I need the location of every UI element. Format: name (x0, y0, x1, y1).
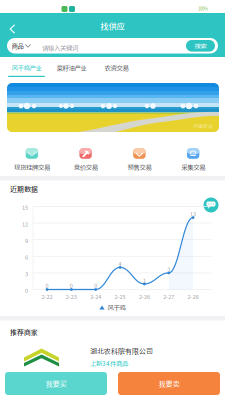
button[interactable]: 搜索 (186, 40, 215, 52)
staticText: 2-23 (66, 292, 77, 301)
staticText: 0 (45, 281, 48, 289)
staticText: 0 (94, 281, 97, 289)
button[interactable]: 我要买 (5, 372, 107, 395)
staticText: 0 (25, 286, 28, 294)
button[interactable]: 现货挂牌交易 (5, 149, 59, 171)
button[interactable]: 商品 (7, 38, 34, 53)
staticText: 我要买 (45, 378, 66, 389)
button[interactable]: 竞价交易 (59, 149, 113, 171)
button[interactable]: 湖北农科院有限公司 (0, 344, 225, 370)
button[interactable]: 我要卖 (118, 372, 220, 395)
staticText: 风干鸡 (108, 303, 126, 312)
staticText: 湖北农科院有限公司 (90, 346, 153, 356)
button[interactable]: Back (3, 18, 22, 40)
button[interactable]: Refresh (203, 197, 218, 212)
staticText: 100% (198, 5, 208, 12)
staticText: 菜籽油产业 (56, 63, 86, 72)
button[interactable]: 预售交易 (112, 149, 166, 171)
staticText: 找供应 (100, 20, 124, 32)
button[interactable]: 采集交易 (166, 149, 220, 171)
staticText: 中国农业 (193, 122, 213, 129)
staticText: 近期数据 (10, 184, 38, 194)
staticText: 6 (25, 253, 28, 261)
staticText: 2-24 (90, 292, 101, 301)
staticText: 推荐商家 (10, 327, 38, 337)
button[interactable]: 农资交易 (94, 57, 139, 79)
staticText: 1 (143, 276, 146, 284)
staticText: 2-22 (41, 292, 52, 301)
staticText: 12 (22, 220, 28, 228)
staticText: 2-27 (163, 292, 174, 301)
staticText: 我要卖 (158, 378, 179, 389)
staticText: 搜索 (194, 41, 206, 50)
staticText: 3 (167, 265, 170, 273)
staticText: 请输入关键词 (42, 43, 78, 52)
staticText: 农资交易 (104, 63, 128, 72)
staticText: 风干鸡产业 (11, 63, 41, 72)
staticText: 商品 (12, 41, 24, 50)
staticText: 上新34件商品 (90, 358, 128, 368)
button[interactable]: 风干鸡产业 (4, 57, 49, 79)
staticText: 预售交易 (127, 162, 151, 172)
staticText: 4 (119, 260, 122, 268)
staticText: 13 (190, 210, 196, 218)
button[interactable]: 菜籽油产业 (49, 57, 94, 79)
staticText: 9 (25, 236, 28, 245)
staticText: 采集交易 (181, 162, 205, 172)
staticText: 2-26 (139, 292, 150, 301)
staticText: 2-25 (115, 292, 126, 301)
staticText: 3 (25, 270, 28, 278)
staticText: 15 (22, 203, 28, 211)
staticText: 现货挂牌交易 (14, 162, 50, 172)
staticText: 0 (70, 281, 73, 289)
staticText: 竞价交易 (74, 162, 98, 172)
staticText: 2-28 (188, 292, 199, 301)
